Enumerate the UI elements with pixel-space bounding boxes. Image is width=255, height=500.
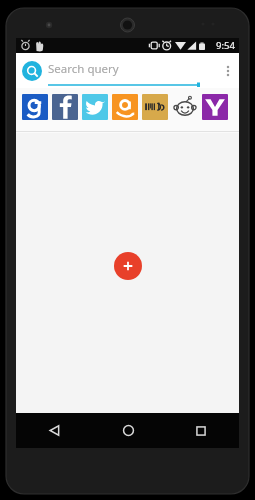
button[interactable]: Recent apps	[181, 413, 221, 448]
staticText: 9:54	[216, 39, 235, 52]
button[interactable]: Search query	[48, 53, 200, 88]
button[interactable]: Amazon	[112, 94, 138, 120]
button[interactable]: More options	[217, 53, 239, 88]
button[interactable]: Twitter	[82, 94, 108, 120]
staticText: Search query	[48, 61, 119, 77]
button[interactable]: Facebook	[52, 94, 78, 120]
button[interactable]: Reddit	[172, 94, 198, 120]
button[interactable]: IMDb	[142, 94, 168, 120]
button[interactable]: Yahoo	[202, 94, 228, 120]
button[interactable]: Search	[22, 61, 42, 81]
button[interactable]: Add	[114, 252, 142, 280]
button[interactable]: Google	[22, 94, 48, 120]
button[interactable]: Back	[34, 413, 74, 448]
button[interactable]: Home	[108, 413, 148, 448]
